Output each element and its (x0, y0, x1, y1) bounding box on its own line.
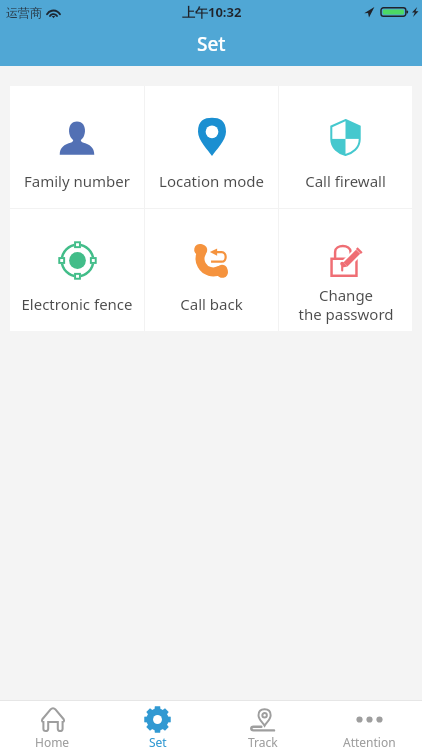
staticText: 运营商 (6, 5, 42, 20)
staticText: Location mode (159, 171, 264, 191)
staticText: Change the password (298, 285, 394, 324)
button[interactable]: Home (0, 701, 105, 750)
button[interactable]: Call firewall (279, 86, 412, 208)
staticText: 上午10:32 (182, 3, 242, 21)
button[interactable]: Family number (10, 86, 144, 208)
staticText: Set (197, 31, 226, 57)
button[interactable]: Call back (145, 209, 278, 331)
staticText: Attention (343, 734, 396, 750)
button[interactable]: Attention (316, 701, 422, 750)
button[interactable]: Track (210, 701, 316, 750)
staticText: Family number (24, 171, 130, 191)
staticText: Electronic fence (21, 294, 133, 314)
button[interactable]: Set (105, 701, 210, 750)
button[interactable]: Change the password (279, 209, 412, 331)
button[interactable]: Electronic fence (10, 209, 144, 331)
staticText: Call back (180, 294, 243, 314)
staticText: Home (35, 734, 70, 750)
staticText: Track (248, 734, 278, 750)
staticText: Set (149, 734, 167, 750)
staticText: Call firewall (305, 171, 386, 191)
button[interactable]: Location mode (145, 86, 278, 208)
